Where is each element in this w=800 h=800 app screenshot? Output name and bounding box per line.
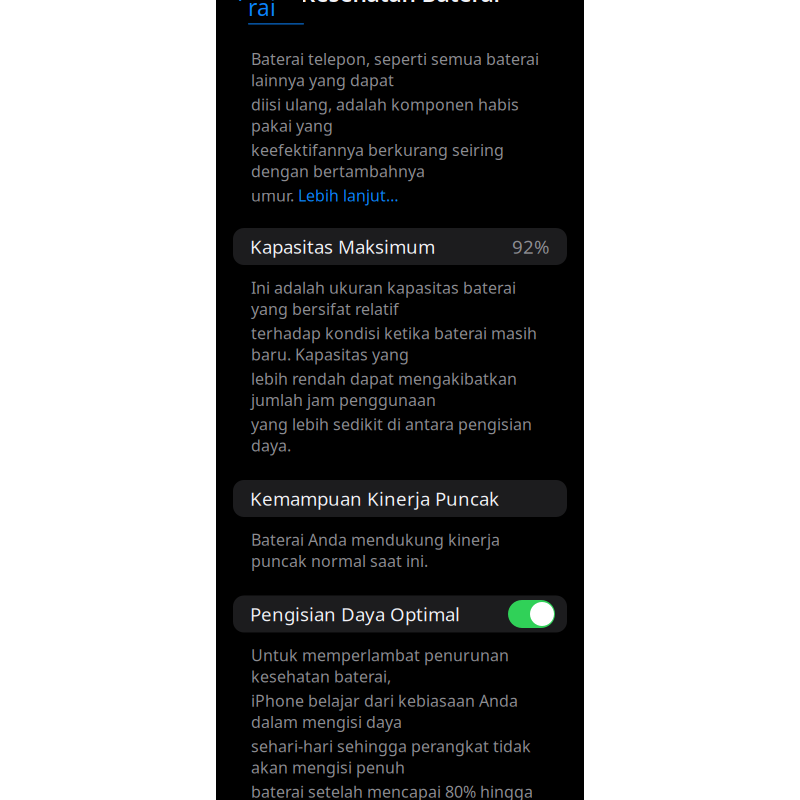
staticText: Baterai Anda mendukung kinerja puncak no… (251, 529, 500, 571)
button[interactable]: Pengisian Daya Optimal (233, 595, 567, 632)
staticText: Baterai telepon, seperti semua baterai l… (251, 48, 539, 91)
staticText: Ini adalah ukuran kapasitas baterai yang… (251, 277, 516, 319)
staticText: yang lebih sedikit di antara pengisian d… (251, 413, 532, 456)
button[interactable]: Baterai (222, 0, 304, 30)
staticText: Lebih lanjut… (298, 185, 399, 206)
button[interactable]: Kapasitas Maksimum (233, 228, 567, 265)
staticText: 92% (512, 234, 550, 259)
staticText: diisi ulang, adalah komponen habis pakai… (251, 94, 519, 136)
staticText: umur. (251, 185, 298, 206)
staticText: baterai setelah mencapai 80% hingga Anda… (251, 781, 533, 800)
staticText: lebih rendah dapat mengakibatkan jumlah … (251, 368, 517, 410)
staticText: iPhone belajar dari kebiasaan Anda dalam… (251, 690, 518, 732)
staticText: Untuk memperlambat penurunan kesehatan b… (251, 644, 509, 687)
staticText: keefektifannya berkurang seiring dengan … (251, 139, 504, 182)
button[interactable]: Lebih lanjut… (298, 185, 399, 206)
staticText: Kapasitas Maksimum (250, 234, 435, 259)
button[interactable]: Kemampuan Kinerja Puncak (233, 480, 567, 517)
staticText: sehari-hari sehingga perangkat tidak aka… (251, 735, 531, 778)
staticText: Baterai (248, 0, 304, 22)
staticText: Kemampuan Kinerja Puncak (250, 486, 499, 511)
staticText: terhadap kondisi ketika baterai masih ba… (251, 322, 537, 365)
staticText: Pengisian Daya Optimal (250, 602, 460, 626)
staticText: Kesehatan Baterai (300, 0, 499, 8)
